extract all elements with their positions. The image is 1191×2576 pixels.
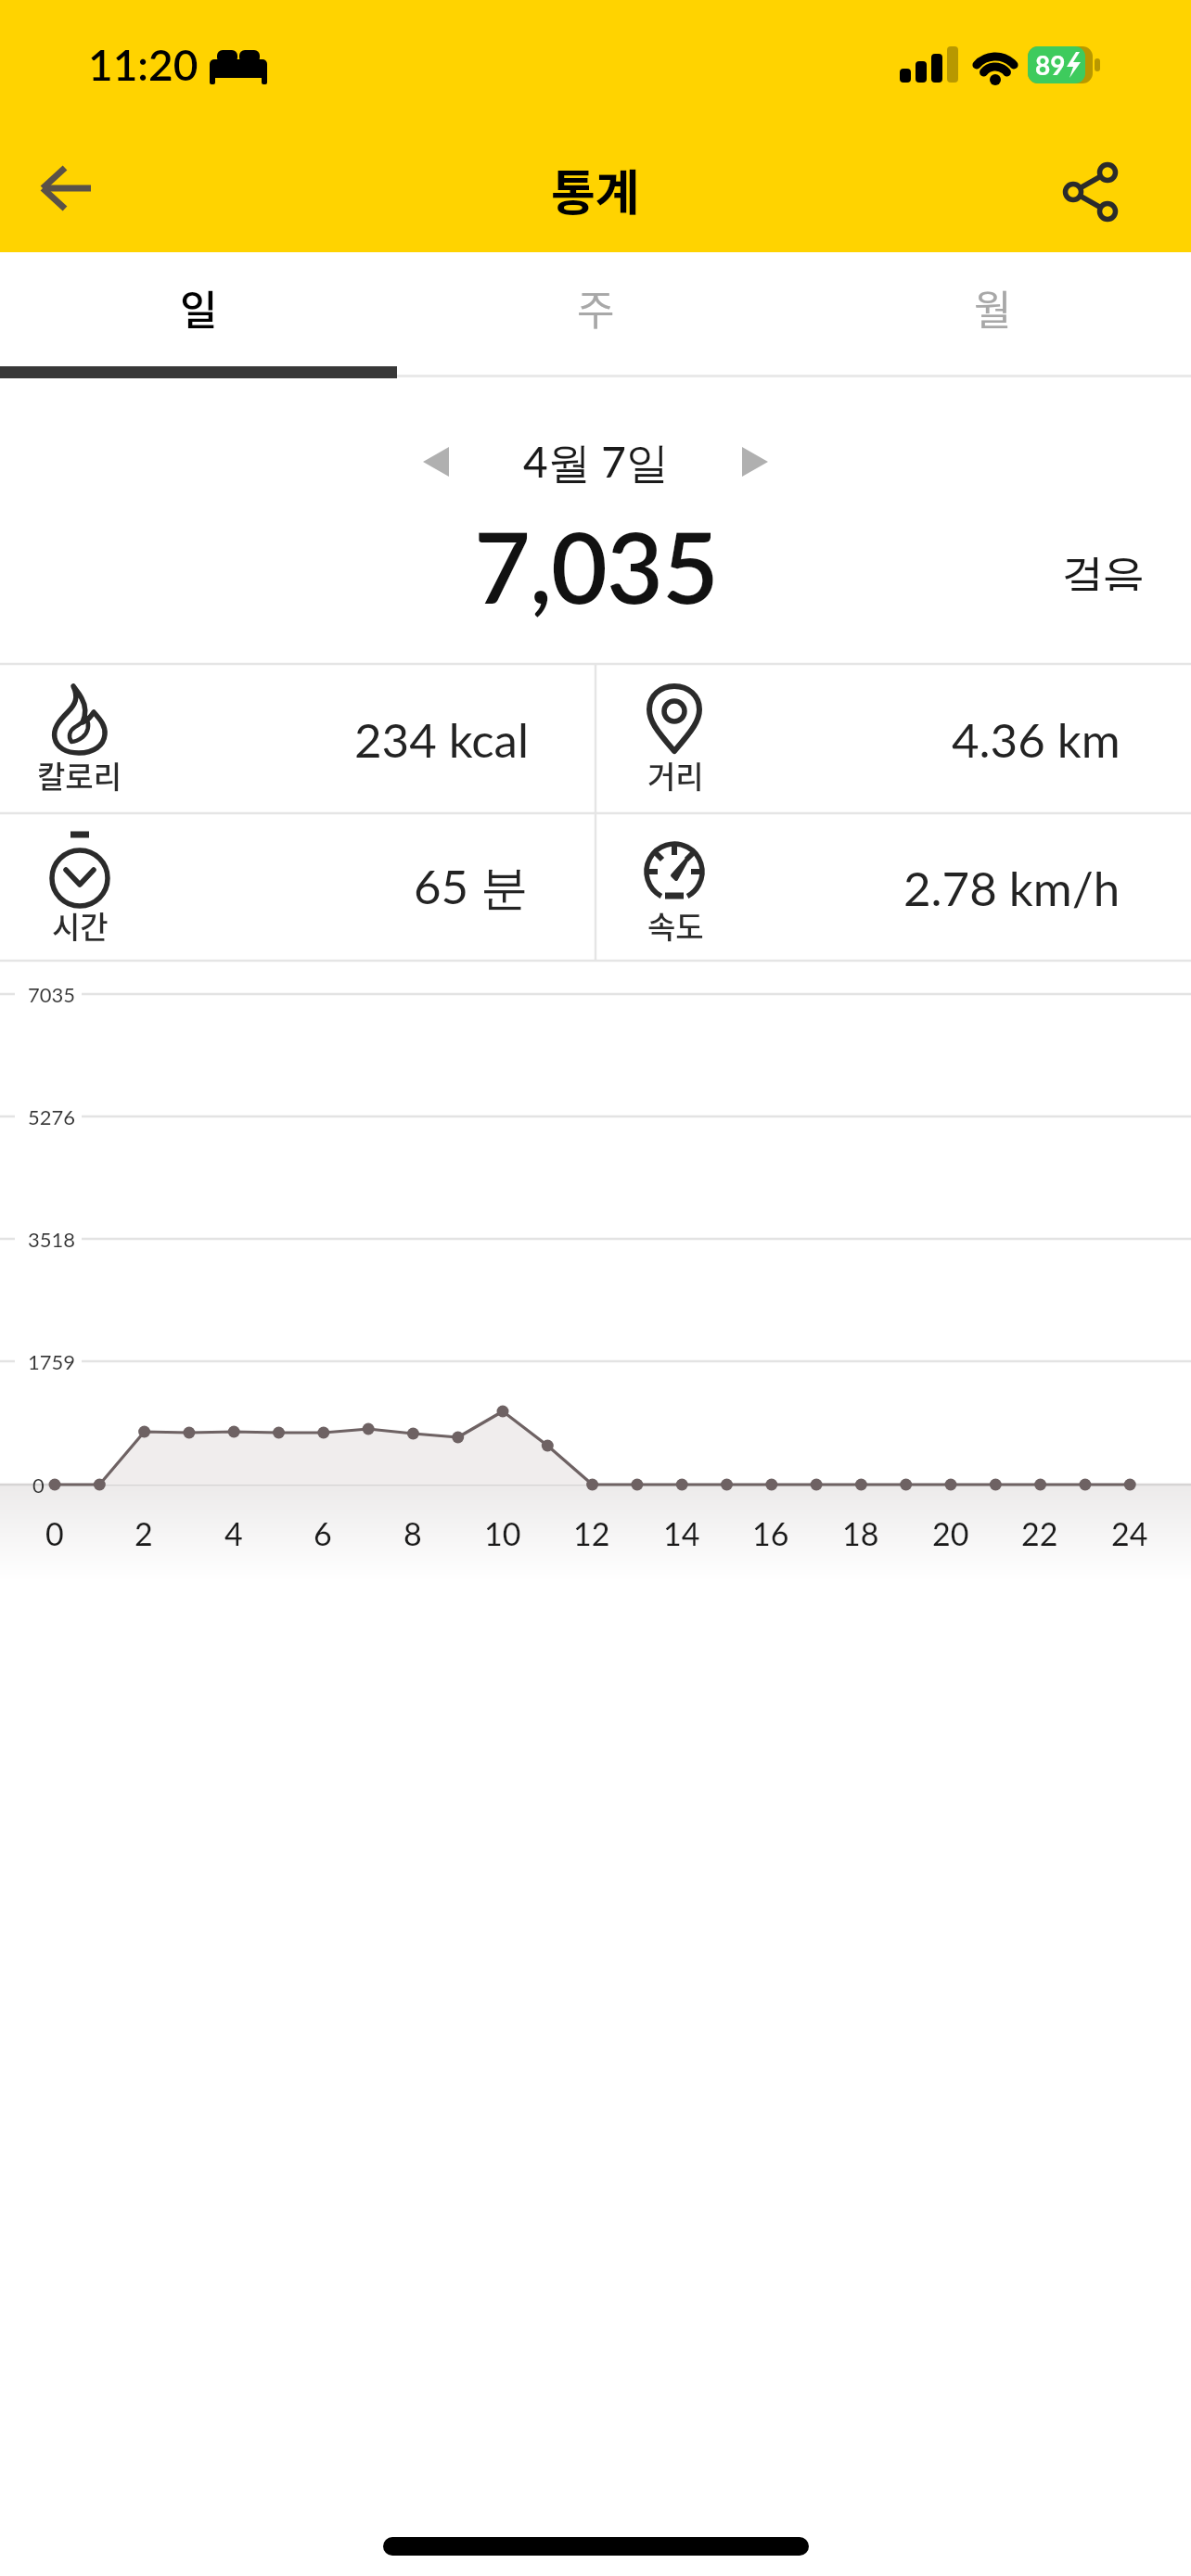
staticText: 월 xyxy=(974,278,1012,330)
staticText: 7,035 xyxy=(474,507,718,624)
staticText: 거리 xyxy=(647,753,704,794)
staticText: 22 xyxy=(1021,1514,1058,1552)
staticText: 8 xyxy=(403,1514,422,1552)
staticText: 1759 xyxy=(28,1349,76,1373)
staticText: 6 xyxy=(314,1514,332,1552)
staticText: 주 xyxy=(577,278,615,330)
staticText: 칼로리 xyxy=(37,753,122,794)
button[interactable] xyxy=(718,432,792,491)
staticText: 12 xyxy=(573,1514,610,1552)
staticText: 일 xyxy=(180,278,218,330)
staticText: 통계 xyxy=(551,155,640,224)
staticText: 14 xyxy=(663,1514,700,1552)
staticText: 20 xyxy=(932,1514,969,1552)
staticText: 4월 7일 xyxy=(523,436,669,488)
staticText: 4.36 km xyxy=(952,711,1121,768)
button[interactable] xyxy=(794,252,1191,378)
staticText: 65 분 xyxy=(414,858,529,918)
button[interactable] xyxy=(0,252,397,378)
staticText: 24 xyxy=(1111,1514,1148,1552)
staticText: 2 xyxy=(134,1514,153,1552)
staticText: 3518 xyxy=(28,1227,76,1251)
staticText: 7035 xyxy=(28,982,76,1006)
staticText: 걸음 xyxy=(1062,542,1145,591)
staticText: 11:20 xyxy=(88,39,198,87)
staticText: 10 xyxy=(484,1514,521,1552)
staticText: 시간 xyxy=(52,903,109,944)
staticText: 234 kcal xyxy=(354,711,529,768)
staticText: 0 xyxy=(32,1473,45,1497)
button[interactable] xyxy=(1043,150,1132,234)
button[interactable] xyxy=(397,252,794,378)
staticText: 89 xyxy=(1035,49,1066,81)
button[interactable] xyxy=(22,147,111,230)
staticText: 16 xyxy=(752,1514,789,1552)
staticText: 속도 xyxy=(647,903,704,944)
staticText: 4 xyxy=(224,1514,243,1552)
staticText: 0 xyxy=(45,1514,64,1552)
staticText: 5276 xyxy=(28,1104,76,1129)
staticText: 2.78 km/h xyxy=(903,860,1121,916)
button[interactable] xyxy=(399,432,473,491)
staticText: 18 xyxy=(842,1514,879,1552)
